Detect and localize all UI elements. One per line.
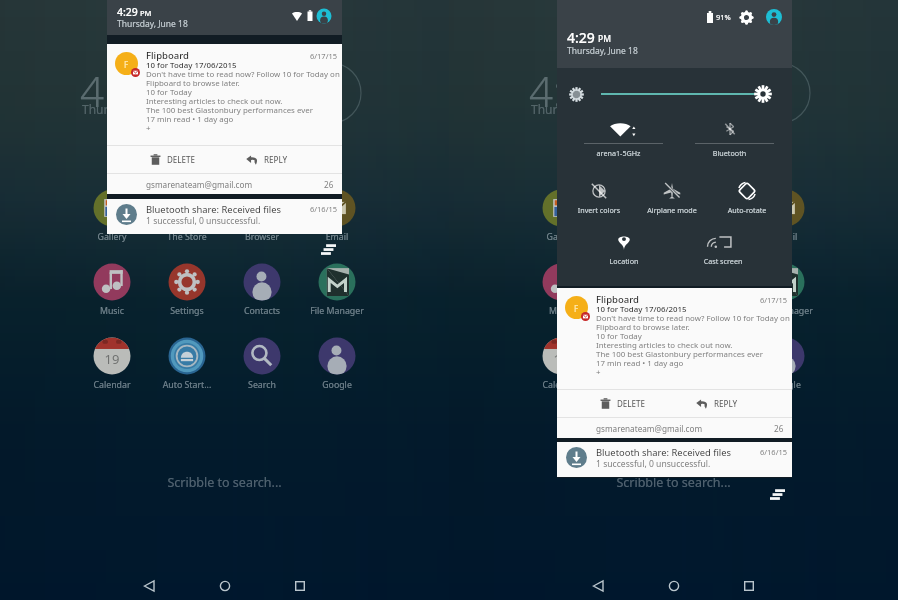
staticText: REPLY bbox=[264, 154, 288, 165]
staticText: Don't have time to read now? Follow 10 f… bbox=[146, 69, 340, 134]
staticText: Browser bbox=[222, 231, 302, 243]
button[interactable]: Bluetooth share: Received files bbox=[107, 199, 342, 234]
staticText: Bluetooth bbox=[676, 148, 783, 158]
button[interactable] bbox=[681, 332, 741, 380]
staticText: 19 bbox=[521, 350, 601, 368]
staticText: Cast screen bbox=[690, 256, 756, 266]
button[interactable] bbox=[232, 258, 292, 306]
staticText: 4:29 bbox=[567, 28, 595, 47]
button[interactable]: Dismiss all notifications bbox=[770, 489, 785, 500]
button[interactable] bbox=[606, 258, 666, 306]
staticText: Location bbox=[591, 256, 657, 266]
staticText: 6/17/15 bbox=[760, 295, 788, 305]
staticText: Scribble to search... bbox=[0, 474, 449, 491]
button[interactable] bbox=[756, 258, 816, 306]
button[interactable] bbox=[232, 184, 292, 232]
staticText: Contacts bbox=[222, 305, 302, 317]
staticText: 91% bbox=[716, 12, 731, 22]
staticText: Email bbox=[746, 231, 826, 243]
button[interactable] bbox=[307, 184, 367, 232]
staticText: Google bbox=[746, 379, 826, 391]
button[interactable] bbox=[531, 332, 591, 380]
button[interactable] bbox=[307, 258, 367, 306]
staticText: DELETE bbox=[167, 154, 195, 165]
staticText: The Store bbox=[147, 231, 227, 243]
staticText: 4:29 bbox=[80, 62, 163, 119]
staticText: The Store bbox=[596, 231, 676, 243]
button[interactable] bbox=[756, 332, 816, 380]
staticText: DELETE bbox=[617, 398, 645, 409]
button[interactable]: Location bbox=[591, 229, 657, 271]
staticText: Search bbox=[671, 379, 751, 391]
button[interactable] bbox=[232, 332, 292, 380]
staticText: PM bbox=[140, 8, 152, 18]
staticText: Airplane mode bbox=[639, 205, 705, 215]
button[interactable]: Invert colors bbox=[566, 178, 632, 220]
staticText: Invert colors bbox=[566, 205, 632, 215]
staticText: Auto Start... bbox=[147, 379, 227, 391]
staticText: 4:29 bbox=[117, 5, 138, 19]
staticText: Bluetooth share: Received files bbox=[146, 203, 282, 216]
button[interactable]: Dismiss all notifications bbox=[321, 244, 336, 255]
staticText: gsmarenateam@gmail.com bbox=[146, 179, 253, 190]
button[interactable] bbox=[307, 332, 367, 380]
staticText: F bbox=[574, 303, 579, 314]
button[interactable]: Settings bbox=[739, 10, 754, 25]
staticText: Search bbox=[222, 379, 302, 391]
button[interactable]: arena1-5GHz bbox=[565, 113, 672, 163]
button[interactable]: Airplane mode bbox=[639, 178, 705, 220]
button[interactable]: User profile bbox=[766, 9, 782, 25]
button[interactable] bbox=[606, 332, 666, 380]
staticText: REPLY bbox=[714, 398, 738, 409]
staticText: 19 bbox=[72, 350, 152, 368]
button[interactable]: DELETE bbox=[107, 146, 217, 173]
button[interactable]: DELETE bbox=[557, 390, 667, 417]
button[interactable]: Recent apps bbox=[735, 572, 763, 600]
button[interactable]: Home bbox=[660, 572, 688, 600]
button[interactable] bbox=[157, 184, 217, 232]
staticText: 10 for Today 17/06/2015 bbox=[596, 304, 687, 315]
button[interactable] bbox=[82, 332, 142, 380]
button[interactable]: Recent apps bbox=[286, 572, 314, 600]
staticText: Email bbox=[297, 231, 377, 243]
button[interactable] bbox=[681, 258, 741, 306]
button[interactable]: Auto-rotate bbox=[714, 178, 780, 220]
button[interactable]: Cast screen bbox=[690, 229, 756, 271]
button[interactable]: Home bbox=[211, 572, 239, 600]
button[interactable]: Bluetooth bbox=[676, 113, 783, 163]
staticText: Music bbox=[72, 305, 152, 317]
button[interactable]: Bluetooth share: Received files bbox=[557, 442, 792, 477]
button[interactable]: Back bbox=[136, 572, 164, 600]
staticText: Gallery bbox=[521, 231, 601, 243]
button[interactable] bbox=[82, 258, 142, 306]
button[interactable]: Back bbox=[585, 572, 613, 600]
staticText: Contacts bbox=[671, 305, 751, 317]
staticText: arena1-5GHz bbox=[565, 148, 672, 158]
staticText: Flipboard bbox=[146, 49, 189, 62]
staticText: 4:29 bbox=[529, 62, 612, 119]
staticText: Scribble to search... bbox=[449, 474, 898, 491]
button[interactable] bbox=[681, 184, 741, 232]
staticText: Browser bbox=[671, 231, 751, 243]
button[interactable]: REPLY bbox=[217, 146, 342, 173]
staticText: 10 for Today 17/06/2015 bbox=[146, 60, 237, 71]
staticText: Settings bbox=[147, 305, 227, 317]
staticText: 26 bbox=[774, 423, 784, 434]
button[interactable] bbox=[606, 184, 666, 232]
staticText: 26 bbox=[324, 179, 334, 190]
staticText: gsmarenateam@gmail.com bbox=[596, 423, 703, 434]
button[interactable] bbox=[82, 184, 142, 232]
staticText: Don't have time to read now? Follow 10 f… bbox=[596, 313, 790, 378]
staticText: Thursday, June 18 bbox=[567, 45, 638, 57]
staticText: PM bbox=[598, 33, 611, 45]
button[interactable] bbox=[157, 332, 217, 380]
staticText: Settings bbox=[596, 305, 676, 317]
staticText: Thursday, June 18 bbox=[117, 18, 188, 30]
staticText: File Manager bbox=[746, 305, 826, 317]
button[interactable] bbox=[531, 258, 591, 306]
button[interactable] bbox=[531, 184, 591, 232]
staticText: Flipboard bbox=[596, 293, 639, 306]
button[interactable] bbox=[157, 258, 217, 306]
button[interactable]: REPLY bbox=[667, 390, 792, 417]
button[interactable] bbox=[756, 184, 816, 232]
